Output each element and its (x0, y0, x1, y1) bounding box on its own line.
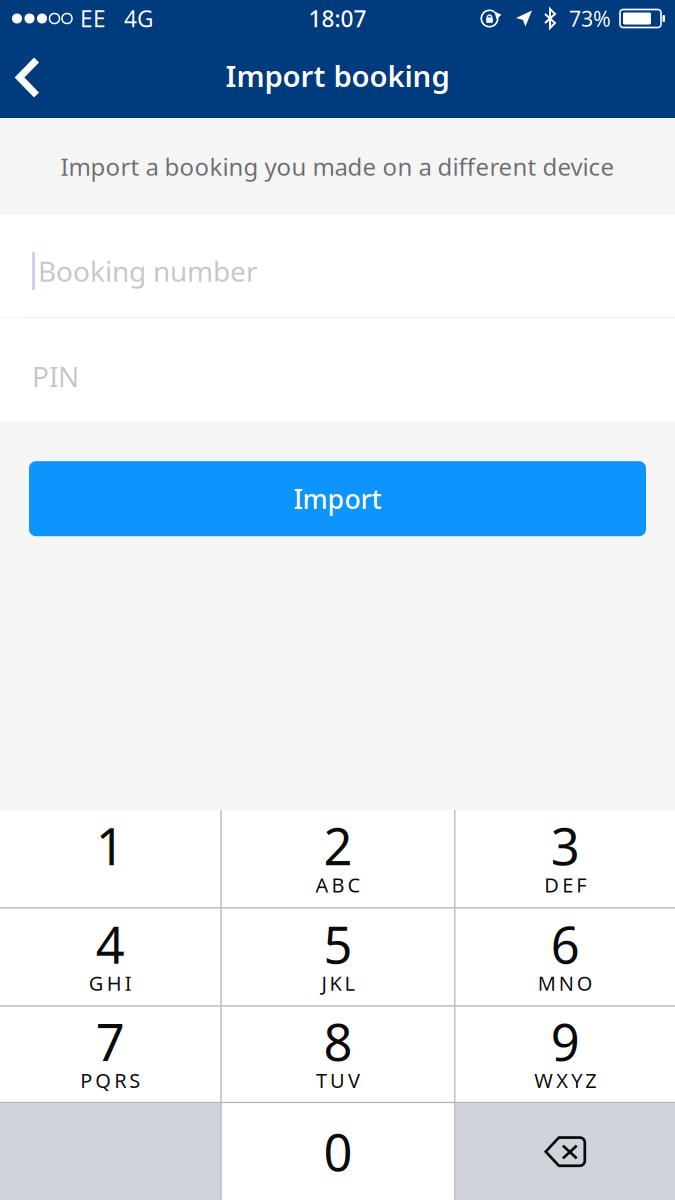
staticText: 0 (323, 1118, 352, 1185)
staticText: 4G (124, 3, 154, 33)
staticText: MNO (538, 970, 593, 996)
button[interactable]: Import (29, 461, 646, 536)
button[interactable]: 4 (0, 909, 220, 1005)
staticText: ABC (315, 871, 360, 898)
staticText: PQRS (80, 1067, 140, 1094)
staticText: EE (80, 3, 106, 33)
staticText: 8 (323, 1008, 352, 1075)
button[interactable]: Delete (456, 1103, 675, 1200)
staticText: JKL (321, 970, 354, 996)
staticText: Import a booking you made on a different… (60, 151, 614, 182)
button[interactable]: 1 (0, 810, 220, 907)
staticText: 1 (96, 812, 125, 879)
staticText: 18:07 (308, 3, 366, 33)
staticText: DEF (544, 871, 586, 898)
staticText: 6 (551, 910, 580, 978)
button[interactable]: 9 (456, 1007, 675, 1102)
staticText: Import booking (225, 56, 449, 95)
button[interactable]: 5 (222, 909, 454, 1005)
staticText: PIN (32, 358, 79, 395)
button[interactable]: 8 (222, 1007, 454, 1102)
button[interactable]: 2 (222, 810, 454, 907)
staticText: 3 (551, 812, 580, 879)
staticText: 2 (323, 812, 352, 879)
staticText: WXYZ (534, 1067, 596, 1094)
staticText: TUV (316, 1067, 360, 1094)
staticText: 5 (323, 910, 352, 978)
staticText: 73% (569, 4, 611, 33)
staticText: 9 (551, 1008, 580, 1075)
staticText: Import (293, 481, 381, 516)
staticText: GHI (89, 970, 132, 996)
staticText: 4 (96, 910, 125, 978)
button[interactable]: 0 (222, 1103, 454, 1200)
button[interactable]: 7 (0, 1007, 220, 1102)
staticText: Booking number (38, 252, 258, 290)
staticText: 7 (96, 1008, 125, 1075)
button[interactable]: 3 (456, 810, 675, 907)
button[interactable]: 6 (456, 909, 675, 1005)
button[interactable]: Back (0, 45, 62, 109)
